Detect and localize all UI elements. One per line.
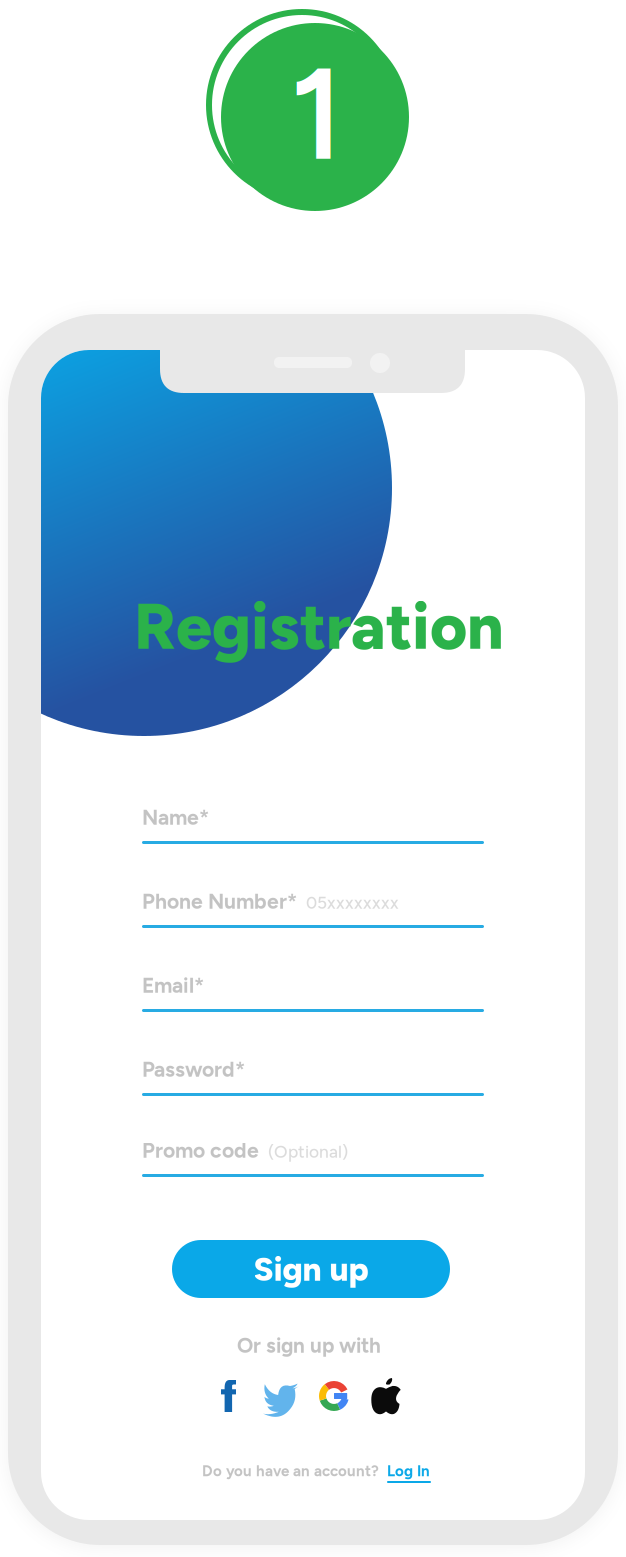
button[interactable]: Phone Number* (142, 874, 484, 928)
button[interactable]: Sign up with Facebook (221, 1380, 236, 1412)
button[interactable]: Sign up with Google (319, 1381, 349, 1411)
staticText: 05xxxxxxxx (306, 892, 399, 913)
staticText: Log In (387, 1462, 430, 1480)
staticText: (Optional) (268, 1141, 348, 1162)
button[interactable]: Do you have an account? (202, 1463, 434, 1487)
staticText: Password* (142, 1057, 245, 1082)
button[interactable]: Email* (142, 958, 484, 1012)
staticText: Promo code (142, 1138, 259, 1163)
staticText: Sign up (253, 1249, 368, 1289)
staticText: Or sign up with (237, 1333, 381, 1358)
button[interactable]: Password* (142, 1042, 484, 1096)
staticText: Do you have an account? (202, 1462, 379, 1480)
staticText: Phone Number* (142, 889, 297, 914)
button[interactable]: Promo code (142, 1123, 484, 1177)
button[interactable]: Sign up (172, 1240, 450, 1298)
staticText: Email* (142, 973, 204, 998)
staticText: 1 (290, 37, 344, 191)
button[interactable]: Name* (142, 790, 484, 844)
staticText: Registration (134, 588, 504, 665)
staticText: Name* (142, 805, 209, 830)
button[interactable]: Sign up with Apple (371, 1378, 401, 1414)
button[interactable]: Sign up with Twitter (263, 1383, 299, 1413)
